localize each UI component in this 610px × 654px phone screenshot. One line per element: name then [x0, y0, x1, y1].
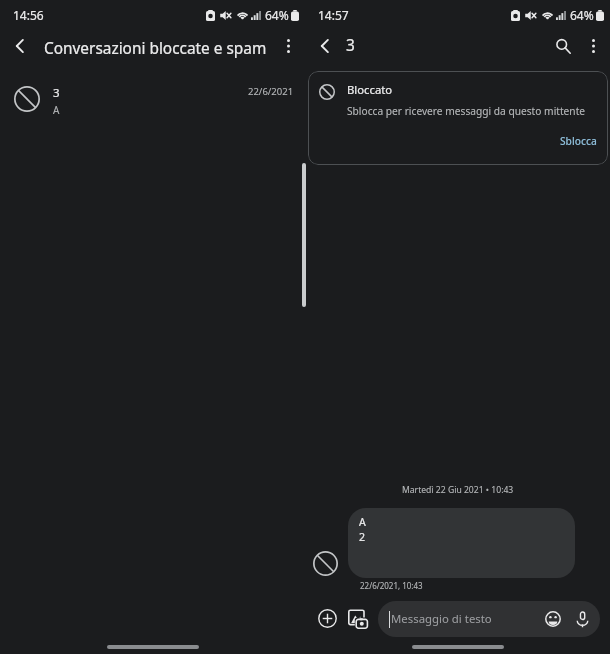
staticText: 3: [346, 35, 355, 56]
staticText: Bloccato: [347, 82, 393, 97]
staticText: 64%: [265, 7, 289, 23]
button[interactable]: More options: [269, 27, 307, 65]
staticText: Sblocca: [560, 134, 597, 148]
staticText: Messaggio di testo: [391, 611, 492, 627]
staticText: A: [359, 515, 366, 529]
staticText: 14:57: [318, 7, 349, 23]
staticText: Martedì 22 Giu 2021 • 10:43: [402, 484, 514, 496]
button[interactable]: Messaggio di testo: [378, 601, 600, 637]
button[interactable]: Search: [544, 27, 582, 65]
staticText: 64%: [570, 7, 594, 23]
button[interactable]: Back: [1, 27, 39, 65]
button[interactable]: Back: [306, 27, 344, 65]
button[interactable]: 3: [0, 76, 305, 122]
staticText: A: [53, 103, 60, 117]
button[interactable]: More options: [574, 27, 610, 65]
button[interactable]: Sblocca: [554, 128, 603, 154]
button[interactable]: Bloccato: [308, 71, 608, 165]
staticText: 22/6/2021, 10:43: [360, 580, 423, 591]
button[interactable]: Gallery and camera: [343, 604, 372, 633]
button[interactable]: Voice message: [570, 607, 594, 631]
button[interactable]: Emoji: [541, 607, 565, 631]
staticText: 3: [53, 85, 60, 101]
button[interactable]: Add attachment: [313, 604, 342, 633]
staticText: 14:56: [13, 7, 44, 23]
staticText: Sblocca per ricevere messaggi da questo …: [347, 104, 586, 118]
button[interactable]: A: [348, 508, 575, 578]
staticText: 2: [359, 530, 366, 544]
staticText: Conversazioni bloccate e spam: [44, 38, 284, 59]
staticText: 22/6/2021: [248, 85, 294, 98]
